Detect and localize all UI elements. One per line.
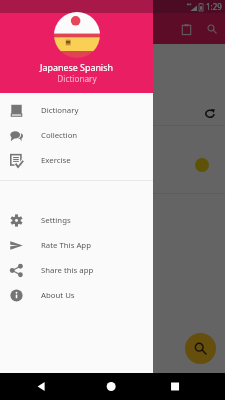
button[interactable]: Settings [0,208,153,233]
staticText: Japanese Spanish [40,61,113,73]
button[interactable]: About Us [0,283,153,308]
button[interactable]: Search [199,16,225,42]
staticText: 1:29 [206,1,222,12]
button[interactable]: Rate This App [0,233,153,258]
staticText: Dictionary [57,73,97,84]
staticText: Rate This App [41,240,91,251]
button[interactable]: Share this app [0,258,153,283]
button[interactable]: Refresh [202,105,218,121]
staticText: Collection [41,130,78,141]
staticText: Settings [41,215,71,226]
staticText: Exercise [41,155,71,166]
staticText: Dictionary [41,105,79,116]
staticText: Share this app [41,265,94,276]
button[interactable]: Dictionary [0,98,153,123]
button[interactable]: Exercise [0,148,153,173]
button[interactable]: Search [185,333,216,364]
button[interactable]: Clipboard [173,16,199,42]
staticText: About Us [41,290,75,301]
button[interactable]: Collection [0,123,153,148]
